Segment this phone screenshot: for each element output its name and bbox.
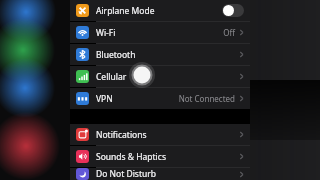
staticText: Sounds & Haptics	[96, 151, 166, 163]
button[interactable]: Bluetooth	[70, 44, 250, 65]
staticText: Wi-Fi	[96, 27, 116, 39]
staticText: Cellular	[96, 71, 127, 83]
button[interactable]: Do Not Disturb	[70, 168, 250, 180]
staticText: Off	[223, 27, 235, 38]
staticText: Not Connected	[178, 93, 235, 104]
staticText: Do Not Disturb	[96, 168, 156, 180]
button[interactable]: Airplane Mode toggle	[222, 4, 244, 17]
button[interactable]: Airplane Mode	[70, 0, 250, 21]
staticText: Airplane Mode	[96, 5, 155, 17]
button[interactable]: VPN	[70, 88, 250, 109]
staticText: Notifications	[96, 129, 147, 141]
button[interactable]: Sounds & Haptics	[70, 146, 250, 167]
button[interactable]: Cellular	[70, 66, 250, 87]
staticText: Bluetooth	[96, 49, 136, 61]
button[interactable]: Wi-Fi	[70, 22, 250, 43]
staticText: VPN	[96, 93, 113, 105]
button[interactable]: Notifications	[70, 124, 250, 145]
